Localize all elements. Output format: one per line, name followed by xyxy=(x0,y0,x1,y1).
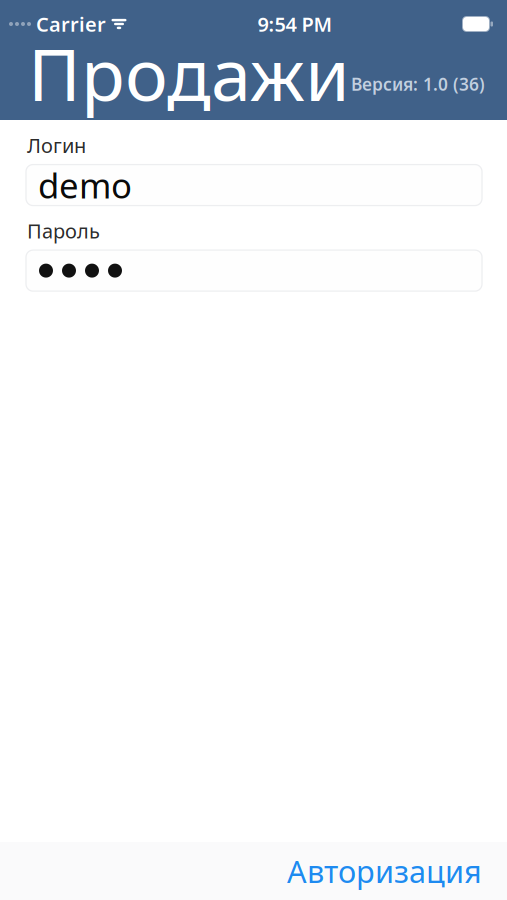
staticText: Продажи xyxy=(28,25,350,121)
staticText: 9:54 PM xyxy=(257,11,332,37)
staticText: Пароль xyxy=(27,218,100,244)
staticText: Версия: 1.0 (36) xyxy=(351,72,485,95)
button[interactable]: demo xyxy=(26,165,482,206)
staticText: Логин xyxy=(27,132,86,159)
staticText: Carrier xyxy=(36,11,106,37)
staticText: Авторизация xyxy=(287,851,482,891)
staticText: demo xyxy=(38,162,132,208)
button[interactable]: Авторизация xyxy=(277,839,492,900)
button[interactable] xyxy=(26,250,482,291)
